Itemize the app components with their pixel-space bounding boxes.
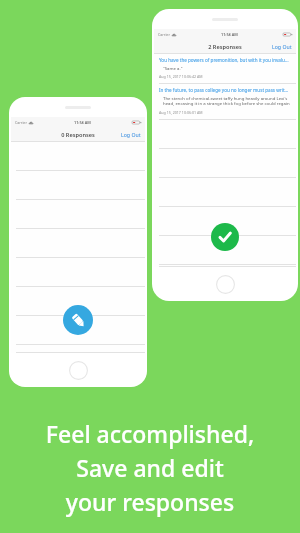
staticText: Log Out <box>121 131 141 138</box>
button[interactable]: You have the powers of premonition, but … <box>154 54 296 83</box>
staticText: Save and edit <box>0 452 300 483</box>
button[interactable] <box>154 207 296 236</box>
staticText: Aug 15, 2017 10:06:42 AM <box>159 74 203 79</box>
staticText: 2 Responses <box>154 43 296 51</box>
button[interactable]: Log Out <box>117 129 145 140</box>
button[interactable] <box>11 258 145 287</box>
button[interactable] <box>154 178 296 207</box>
staticText: your responses <box>0 486 300 517</box>
button[interactable]: Saved <box>211 223 239 251</box>
button[interactable]: In the future, to pass college you no lo… <box>154 84 296 119</box>
staticText: Log Out <box>272 43 292 50</box>
staticText: 11:54 AM <box>74 120 91 125</box>
button[interactable] <box>11 171 145 200</box>
staticText: 11:54 AM <box>221 32 238 37</box>
staticText: 0 Responses <box>11 131 145 139</box>
button[interactable] <box>154 236 296 265</box>
button[interactable] <box>11 287 145 316</box>
button[interactable] <box>11 345 145 353</box>
staticText: Carrier <box>15 120 27 125</box>
button[interactable] <box>11 316 145 345</box>
button[interactable] <box>11 200 145 229</box>
button[interactable]: Compose new response <box>63 305 93 335</box>
staticText: Aug 15, 2017 10:06:01 AM <box>159 110 203 115</box>
staticText: Feel accomplished, <box>0 418 300 449</box>
staticText: The stench of chemical-sweet taffy hung … <box>163 95 293 107</box>
button[interactable] <box>154 265 296 267</box>
button[interactable] <box>154 120 296 149</box>
staticText: You have the powers of premonition, but … <box>159 57 289 63</box>
staticText: "Same a." <box>163 65 183 71</box>
staticText: Carrier <box>158 32 170 37</box>
staticText: In the future, to pass college you no lo… <box>159 87 289 93</box>
button[interactable] <box>154 149 296 178</box>
button[interactable] <box>11 229 145 258</box>
button[interactable]: Log Out <box>268 41 296 52</box>
button[interactable] <box>11 142 145 171</box>
